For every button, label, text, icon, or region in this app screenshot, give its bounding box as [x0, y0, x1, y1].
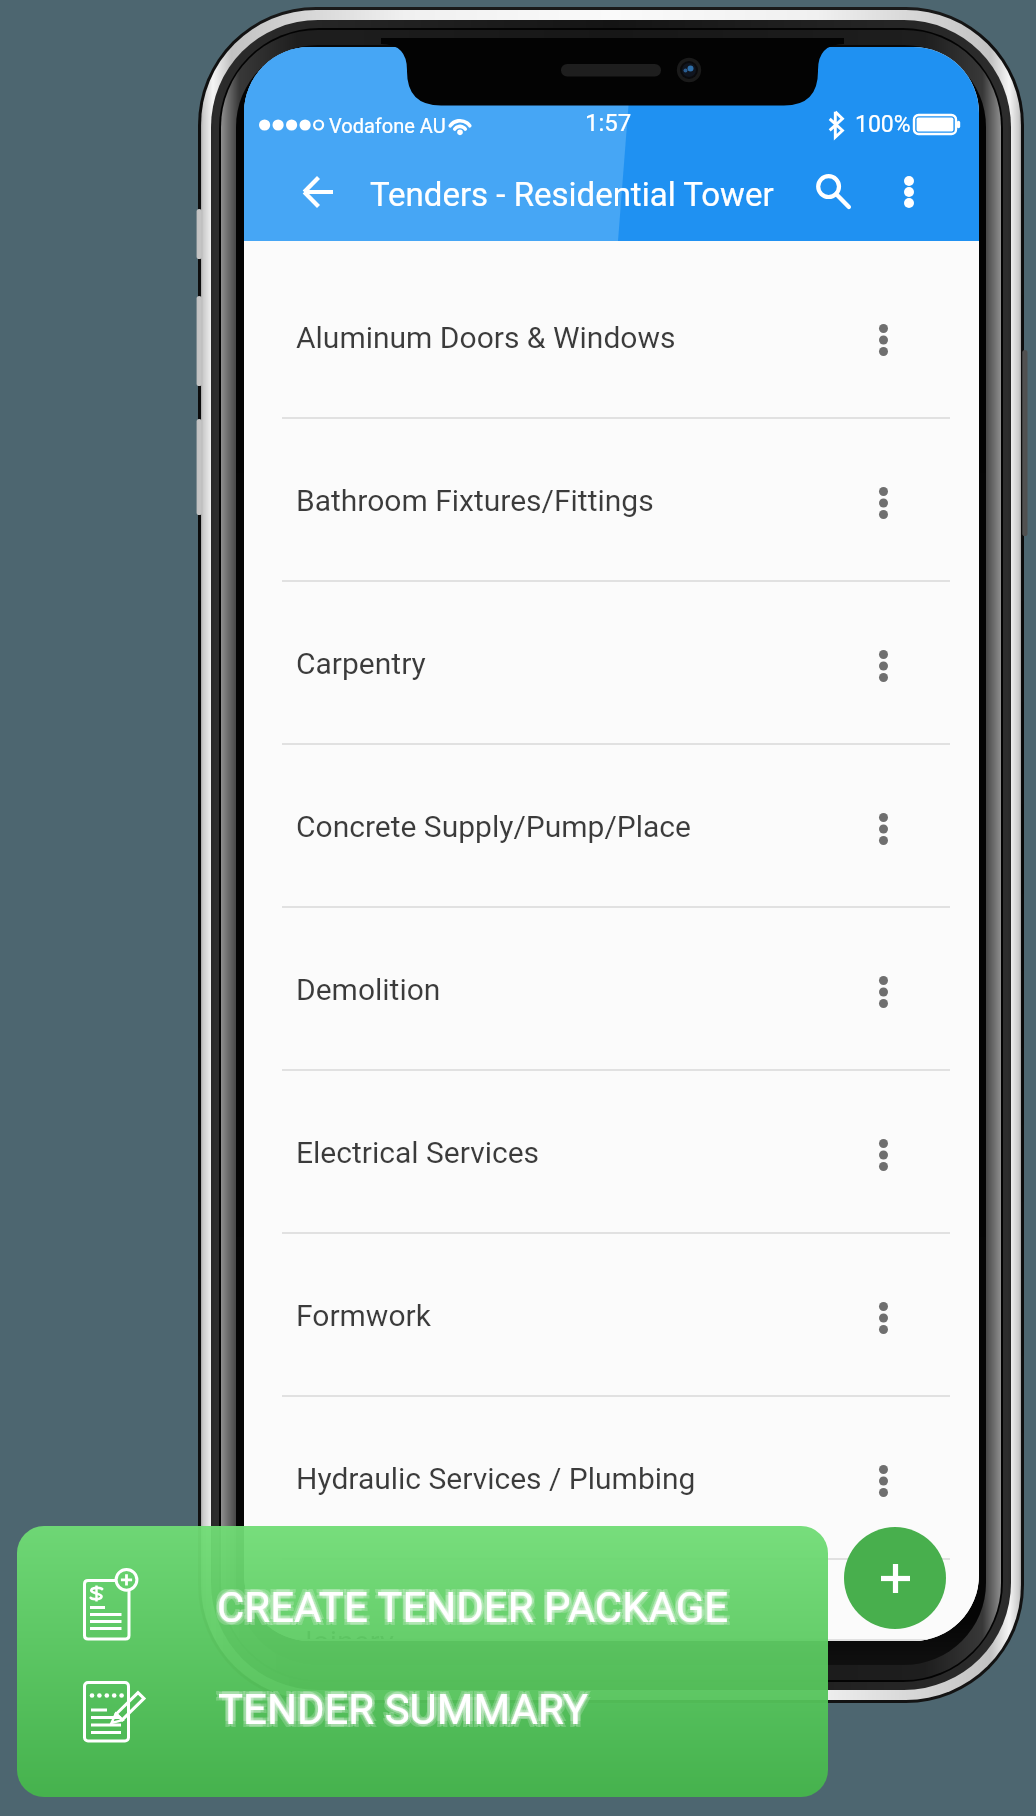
staticText: CREATE TENDER PACKAGE	[220, 1586, 732, 1635]
button[interactable]: Row options	[853, 473, 913, 533]
staticText: Bathroom Fixtures/Fittings	[296, 483, 654, 518]
staticText: TENDER SUMMARY	[218, 1683, 589, 1732]
staticText: TENDER SUMMARY	[215, 1688, 586, 1737]
button[interactable]: TENDER SUMMARY	[17, 1662, 828, 1797]
button[interactable]: Row options	[853, 1451, 913, 1511]
button[interactable]: Row options	[853, 799, 913, 859]
staticText: Demolition	[296, 972, 441, 1007]
staticText: CREATE TENDER PACKAGE	[219, 1583, 731, 1632]
staticText: Concrete Supply/Pump/Place	[296, 809, 691, 844]
staticText: TENDER SUMMARY	[220, 1685, 591, 1734]
button[interactable]: Aluminum Doors & Windows	[244, 256, 979, 419]
staticText: CREATE TENDER PACKAGE	[220, 1580, 732, 1629]
button[interactable]: Formwork	[244, 1234, 979, 1397]
staticText: CREATE TENDER PACKAGE	[217, 1583, 729, 1632]
button[interactable]: Search	[794, 152, 874, 232]
button[interactable]: Demolition	[244, 908, 979, 1071]
staticText: CREATE TENDER PACKAGE	[214, 1580, 726, 1629]
staticText: Carpentry	[296, 646, 426, 681]
staticText: TENDER SUMMARY	[218, 1685, 589, 1734]
button[interactable]: Concrete Supply/Pump/Place	[244, 745, 979, 908]
staticText: TENDER SUMMARY	[215, 1682, 586, 1731]
staticText: Aluminum Doors & Windows	[296, 320, 676, 355]
button[interactable]: Row options	[853, 1288, 913, 1348]
staticText: Vodafone AU	[329, 114, 446, 137]
button[interactable]: More options	[869, 152, 949, 232]
button[interactable]: Electrical Services	[244, 1071, 979, 1234]
staticText: TENDER SUMMARY	[221, 1682, 592, 1731]
staticText: Tenders - Residential Tower	[370, 175, 774, 214]
staticText: CREATE TENDER PACKAGE	[214, 1586, 726, 1635]
staticText: CREATE TENDER PACKAGE	[217, 1585, 729, 1634]
staticText: TENDER SUMMARY	[221, 1688, 592, 1737]
staticText: CREATE TENDER PACKAGE	[215, 1583, 727, 1632]
staticText: Electrical Services	[296, 1135, 540, 1170]
button[interactable]: CREATE TENDER PACKAGE	[17, 1526, 828, 1662]
button[interactable]: Row options	[853, 636, 913, 696]
button[interactable]: Hydraulic Services / Plumbing	[244, 1397, 979, 1560]
staticText: Hydraulic Services / Plumbing	[296, 1461, 696, 1496]
staticText: Formwork	[296, 1298, 431, 1333]
button[interactable]: Row options	[853, 1125, 913, 1185]
button[interactable]: Bathroom Fixtures/Fittings	[244, 419, 979, 582]
button[interactable]: Joinery	[244, 1560, 979, 1641]
staticText: TENDER SUMMARY	[218, 1687, 589, 1736]
staticText: 100%	[855, 111, 911, 138]
staticText: Joinery	[296, 1624, 395, 1641]
button[interactable]: Row options	[853, 310, 913, 370]
button[interactable]: Back	[278, 152, 358, 232]
button[interactable]: Add tender	[844, 1527, 946, 1629]
button[interactable]: Carpentry	[244, 582, 979, 745]
staticText: 1:57	[585, 109, 632, 137]
staticText: CREATE TENDER PACKAGE	[217, 1581, 729, 1630]
staticText: TENDER SUMMARY	[216, 1685, 587, 1734]
button[interactable]: Row options	[853, 962, 913, 1022]
